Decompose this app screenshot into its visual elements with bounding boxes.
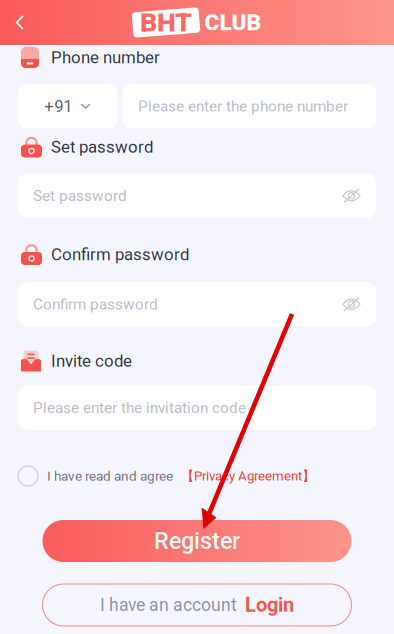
button[interactable]: I have an account [42,584,351,626]
staticText: Confirm password [51,245,189,264]
staticText: I have an account [100,595,237,615]
staticText: Invite code [51,351,132,371]
staticText: Set password [33,187,127,205]
button[interactable]: +91 [18,84,117,128]
staticText: Please enter the invitation code [33,399,246,417]
staticText: Phone number [51,48,160,67]
staticText: I have read and agree [47,468,173,484]
button[interactable]: Register [42,520,351,562]
staticText: Confirm password [33,295,158,313]
button[interactable]: I have read and agree [18,466,376,486]
staticText: Register [154,527,240,555]
staticText: Please enter the phone number [138,97,348,115]
staticText: +91 [44,96,72,116]
staticText: CLUB [204,9,261,36]
staticText: Login [245,593,294,617]
staticText: Set password [51,137,153,157]
button[interactable]: Back [0,0,40,45]
staticText: 【Privacy Agreement】 [181,468,315,484]
staticText: BHT [140,7,192,38]
